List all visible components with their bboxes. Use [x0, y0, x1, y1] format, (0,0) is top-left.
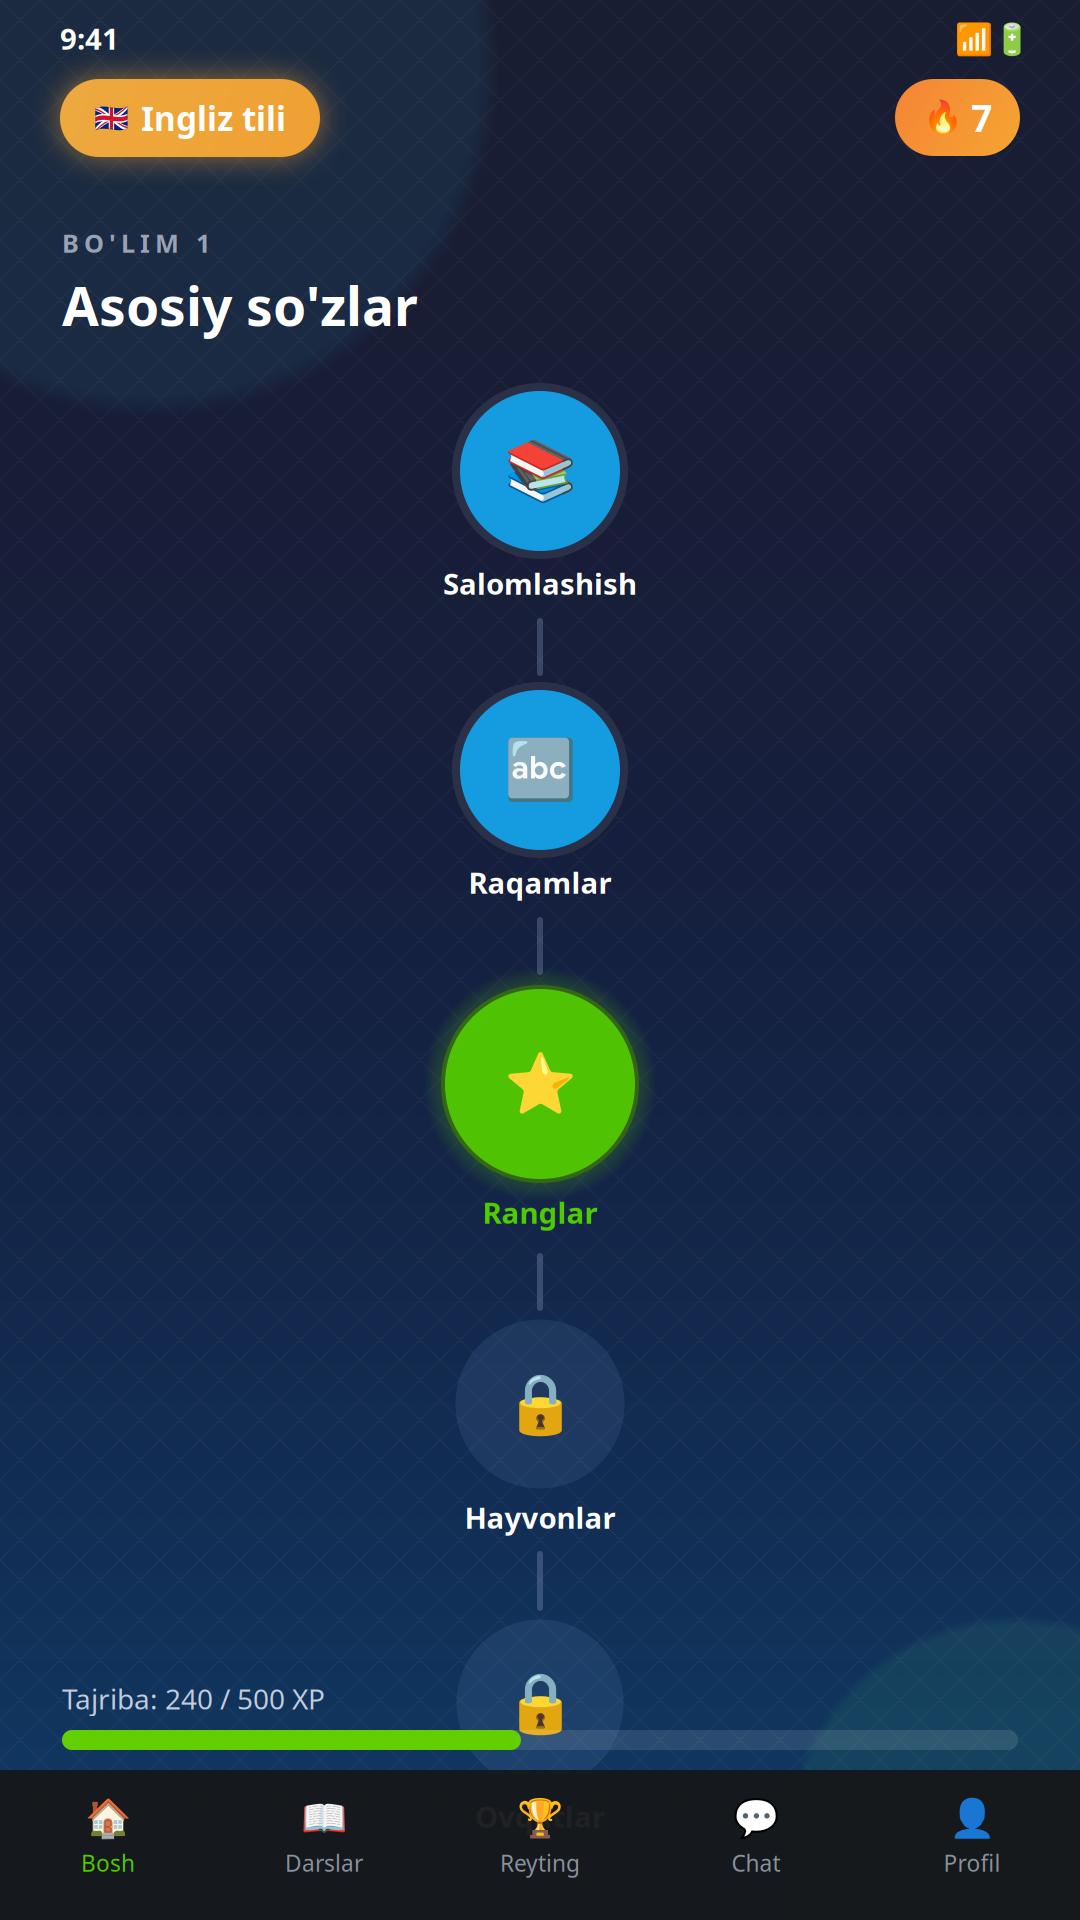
staticText: 💬: [733, 1797, 779, 1840]
staticText: 🇬🇧: [94, 102, 129, 134]
button[interactable]: Chat: [648, 1770, 864, 1920]
staticText: 🔥: [923, 99, 963, 136]
button[interactable]: Ovqatlar: [430, 1593, 649, 1812]
staticText: Raqamlar: [468, 863, 611, 902]
staticText: 🔒: [503, 1669, 576, 1736]
staticText: 👤: [949, 1797, 995, 1840]
staticText: Tajriba: 240 / 500 XP: [62, 1680, 325, 1717]
button[interactable]: Hayvonlar: [429, 1293, 650, 1514]
staticText: Reyting: [500, 1848, 580, 1878]
staticText: 📖: [301, 1797, 347, 1840]
staticText: Chat: [731, 1848, 780, 1878]
staticText: 📚: [503, 437, 576, 504]
button[interactable]: Raqamlar: [434, 664, 646, 876]
staticText: Bosh: [81, 1848, 135, 1878]
staticText: 🔤: [503, 736, 576, 803]
staticText: 📶: [955, 22, 993, 57]
staticText: Ranglar: [482, 1193, 597, 1232]
button[interactable]: Bosh: [0, 1770, 216, 1920]
button[interactable]: Ingliz tili: [60, 79, 320, 157]
staticText: 🏠: [85, 1797, 131, 1840]
staticText: 🏆: [517, 1797, 563, 1840]
button[interactable]: Kunlik seriya 7: [895, 79, 1020, 156]
staticText: Asosiy so'zlar: [62, 270, 418, 341]
staticText: 9:41: [60, 19, 119, 58]
staticText: Hayvonlar: [464, 1498, 615, 1537]
staticText: ⭐️: [503, 1050, 576, 1117]
staticText: Ovqatlar: [475, 1797, 605, 1836]
staticText: Profil: [943, 1848, 1000, 1878]
staticText: BO'LIM 1: [62, 226, 210, 260]
button[interactable]: Profil: [864, 1770, 1080, 1920]
staticText: Ingliz tili: [141, 96, 286, 140]
button[interactable]: Salomlashish: [434, 365, 646, 577]
staticText: 🔋: [993, 22, 1031, 57]
button[interactable]: Ranglar: [419, 963, 661, 1205]
button[interactable]: Reyting: [432, 1770, 648, 1920]
staticText: 7: [971, 93, 992, 142]
staticText: Salomlashish: [443, 564, 637, 603]
button[interactable]: Darslar: [216, 1770, 432, 1920]
staticText: Darslar: [285, 1848, 363, 1878]
staticText: 🔒: [503, 1370, 576, 1437]
